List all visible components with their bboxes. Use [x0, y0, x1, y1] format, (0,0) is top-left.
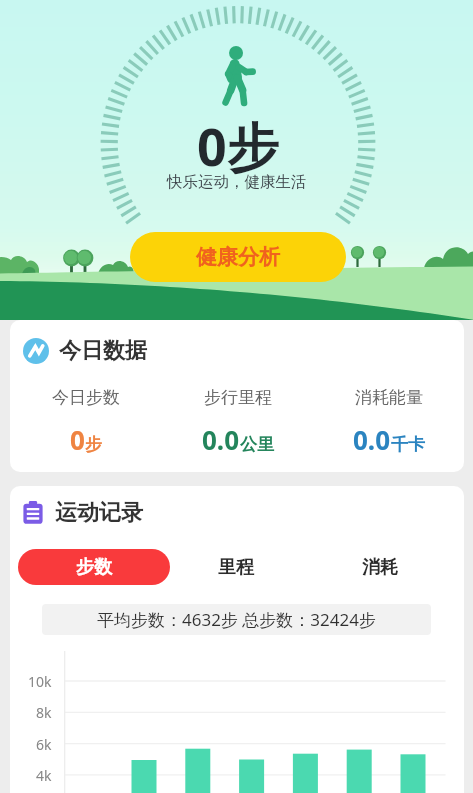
staticText: 平均步数：4632步 总步数：32424步: [97, 608, 376, 631]
button[interactable]: 消耗: [325, 549, 435, 585]
staticText: 步数: [76, 556, 112, 579]
button[interactable]: 步行里程: [162, 387, 313, 457]
staticText: 10k: [28, 672, 52, 690]
staticText: 步行里程: [204, 387, 272, 408]
button[interactable]: 健康分析: [130, 232, 346, 282]
staticText: 消耗: [362, 556, 398, 579]
staticText: 运动记录: [55, 499, 143, 527]
staticText: 0: [70, 422, 85, 457]
button[interactable]: 今日步数: [10, 387, 162, 457]
staticText: 8k: [36, 703, 52, 721]
staticText: 千卡: [391, 434, 425, 455]
staticText: 0步: [197, 110, 279, 181]
staticText: 里程: [218, 556, 254, 579]
button[interactable]: 里程: [181, 549, 291, 585]
staticText: 消耗能量: [355, 387, 423, 408]
button[interactable]: 步数: [18, 549, 170, 585]
staticText: 健康分析: [196, 244, 280, 270]
staticText: 0.0: [202, 422, 240, 457]
staticText: 4k: [36, 766, 52, 784]
staticText: 今日数据: [59, 337, 147, 365]
staticText: 0.0: [353, 422, 391, 457]
staticText: 公里: [240, 434, 274, 455]
button[interactable]: 消耗能量: [313, 387, 464, 457]
staticText: 快乐运动，健康生活: [167, 172, 307, 192]
staticText: 6k: [36, 735, 52, 753]
staticText: 今日步数: [52, 387, 120, 408]
staticText: 步: [85, 434, 102, 455]
